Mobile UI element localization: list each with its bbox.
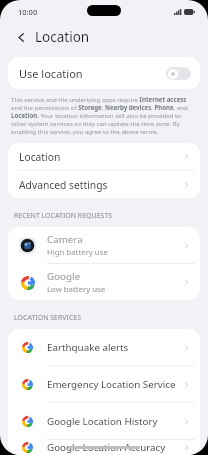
button[interactable]: Back: [12, 28, 30, 46]
staticText: Google: [47, 270, 81, 283]
staticText: 10:00: [18, 7, 38, 17]
staticText: Emergency Location Service: [47, 378, 183, 391]
staticText: Google Location Accuracy: [47, 441, 183, 454]
staticText: LOCATION SERVICES: [14, 313, 82, 323]
staticText: RECENT LOCATION REQUESTS: [14, 211, 113, 221]
staticText: Location: [19, 150, 183, 164]
button[interactable]: Google Location Accuracy: [8, 440, 200, 455]
staticText: Use location: [19, 66, 166, 81]
staticText: Advanced settings: [19, 178, 183, 192]
button[interactable]: Earthquake alerts: [8, 329, 200, 365]
staticText: High battery use: [47, 247, 108, 258]
button[interactable]: Advanced settings: [8, 171, 200, 198]
staticText: Google Location History: [47, 415, 183, 428]
button[interactable]: Google: [8, 264, 200, 300]
button[interactable]: Emergency Location Service: [8, 366, 200, 402]
button[interactable]: Google Location History: [8, 403, 200, 439]
button[interactable]: Use location: [8, 57, 200, 89]
staticText: Low battery use: [47, 284, 106, 295]
button[interactable]: Use location: [166, 67, 191, 80]
button[interactable]: Location: [8, 143, 200, 170]
staticText: Location: [35, 28, 90, 46]
staticText: This service and the underlying apps req…: [11, 95, 197, 135]
staticText: Camera: [47, 233, 83, 246]
staticText: Earthquake alerts: [47, 341, 183, 354]
button[interactable]: Camera: [8, 227, 200, 263]
